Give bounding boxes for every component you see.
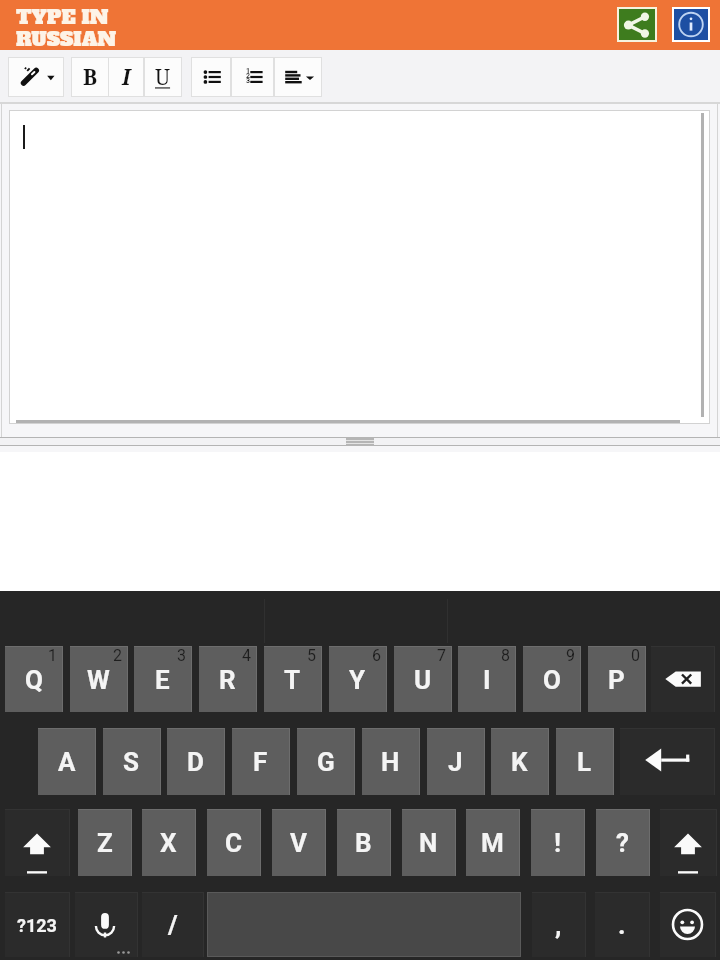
button[interactable]: G: [297, 729, 354, 795]
staticText: E: [155, 665, 170, 695]
staticText: V: [290, 828, 307, 858]
button[interactable]: ,: [532, 893, 585, 957]
button[interactable]: ?: [596, 810, 649, 876]
staticText: P: [608, 665, 625, 695]
button[interactable]: Enter: [620, 729, 714, 795]
staticText: 7: [437, 646, 446, 665]
button[interactable]: H: [362, 729, 419, 795]
button[interactable]: Z: [78, 810, 131, 876]
button[interactable]: Bulleted list: [192, 58, 230, 96]
button[interactable]: E: [134, 647, 191, 712]
button[interactable]: Alignment: [275, 58, 321, 96]
button[interactable]: N: [402, 810, 455, 876]
button[interactable]: Shift: [660, 810, 716, 876]
staticText: 2: [246, 72, 251, 80]
staticText: C: [225, 828, 243, 858]
button[interactable]: O: [523, 647, 580, 712]
staticText: 1: [48, 646, 57, 665]
staticText: B: [83, 63, 98, 92]
button[interactable]: Shift: [5, 810, 69, 876]
staticText: 3: [246, 77, 251, 85]
staticText: W: [87, 665, 110, 695]
button[interactable]: /: [142, 893, 203, 957]
staticText: Z: [97, 828, 113, 858]
button[interactable]: Resize editor: [346, 437, 374, 446]
staticText: TYPE IN: [16, 3, 109, 30]
staticText: L: [577, 747, 592, 777]
staticText: 0: [631, 646, 640, 665]
staticText: T: [284, 665, 301, 695]
button[interactable]: Style: [9, 58, 63, 96]
button[interactable]: V: [272, 810, 325, 876]
staticText: J: [448, 747, 463, 777]
button[interactable]: D: [167, 729, 224, 795]
button[interactable]: R: [199, 647, 256, 712]
staticText: F: [253, 747, 268, 777]
button[interactable]: Underline: [145, 58, 181, 96]
staticText: R: [219, 665, 236, 695]
button[interactable]: Italic: [109, 58, 143, 96]
button[interactable]: A: [38, 729, 95, 795]
staticText: ?: [616, 828, 629, 858]
staticText: S: [123, 747, 140, 777]
button[interactable]: W: [70, 647, 127, 712]
staticText: A: [58, 747, 76, 777]
staticText: 5: [307, 646, 316, 665]
button[interactable]: P: [588, 647, 645, 712]
button[interactable]: Emoji: [660, 893, 715, 957]
staticText: I: [483, 665, 491, 695]
staticText: H: [381, 747, 400, 777]
staticText: 2: [113, 646, 122, 665]
staticText: ,: [555, 910, 562, 940]
button[interactable]: !: [531, 810, 584, 876]
button[interactable]: Voice input: [75, 893, 137, 957]
button[interactable]: J: [427, 729, 484, 795]
button[interactable]: X: [142, 810, 195, 876]
button[interactable]: S: [103, 729, 160, 795]
button[interactable]: M: [466, 810, 519, 876]
button[interactable]: T: [264, 647, 321, 712]
staticText: Y: [349, 665, 366, 695]
button[interactable]: U: [394, 647, 451, 712]
button[interactable]: Info: [674, 9, 708, 40]
button[interactable]: L: [556, 729, 613, 795]
staticText: 9: [566, 646, 575, 665]
button[interactable]: Backspace: [651, 647, 714, 712]
staticText: 4: [242, 646, 251, 665]
staticText: D: [187, 747, 204, 777]
button[interactable]: Q: [5, 647, 62, 712]
button[interactable]: ?123: [5, 893, 69, 957]
staticText: N: [419, 828, 438, 858]
staticText: K: [511, 747, 528, 777]
staticText: 8: [501, 646, 510, 665]
staticText: M: [481, 828, 504, 858]
button[interactable]: .: [595, 893, 649, 957]
staticText: I: [122, 63, 131, 92]
staticText: 1: [246, 67, 251, 75]
staticText: !: [554, 828, 562, 858]
staticText: G: [317, 747, 335, 777]
staticText: B: [355, 828, 372, 858]
button[interactable]: Share: [619, 9, 655, 40]
staticText: RUSSIAN: [16, 25, 117, 52]
staticText: 6: [372, 646, 381, 665]
staticText: /: [168, 910, 178, 940]
button[interactable]: I: [458, 647, 515, 712]
button[interactable]: F: [232, 729, 289, 795]
button[interactable]: [10, 111, 709, 423]
staticText: O: [543, 665, 561, 695]
staticText: ?123: [17, 915, 57, 936]
staticText: Q: [25, 665, 43, 695]
staticText: .: [618, 910, 626, 940]
staticText: 3: [177, 646, 186, 665]
staticText: U: [155, 63, 171, 92]
button[interactable]: Bold: [72, 58, 108, 96]
button[interactable]: B: [337, 810, 390, 876]
button[interactable]: K: [491, 729, 548, 795]
staticText: X: [160, 828, 177, 858]
button[interactable]: Y: [329, 647, 386, 712]
button[interactable]: C: [207, 810, 260, 876]
staticText: U: [414, 665, 432, 695]
button[interactable]: Numbered list: [232, 58, 273, 96]
